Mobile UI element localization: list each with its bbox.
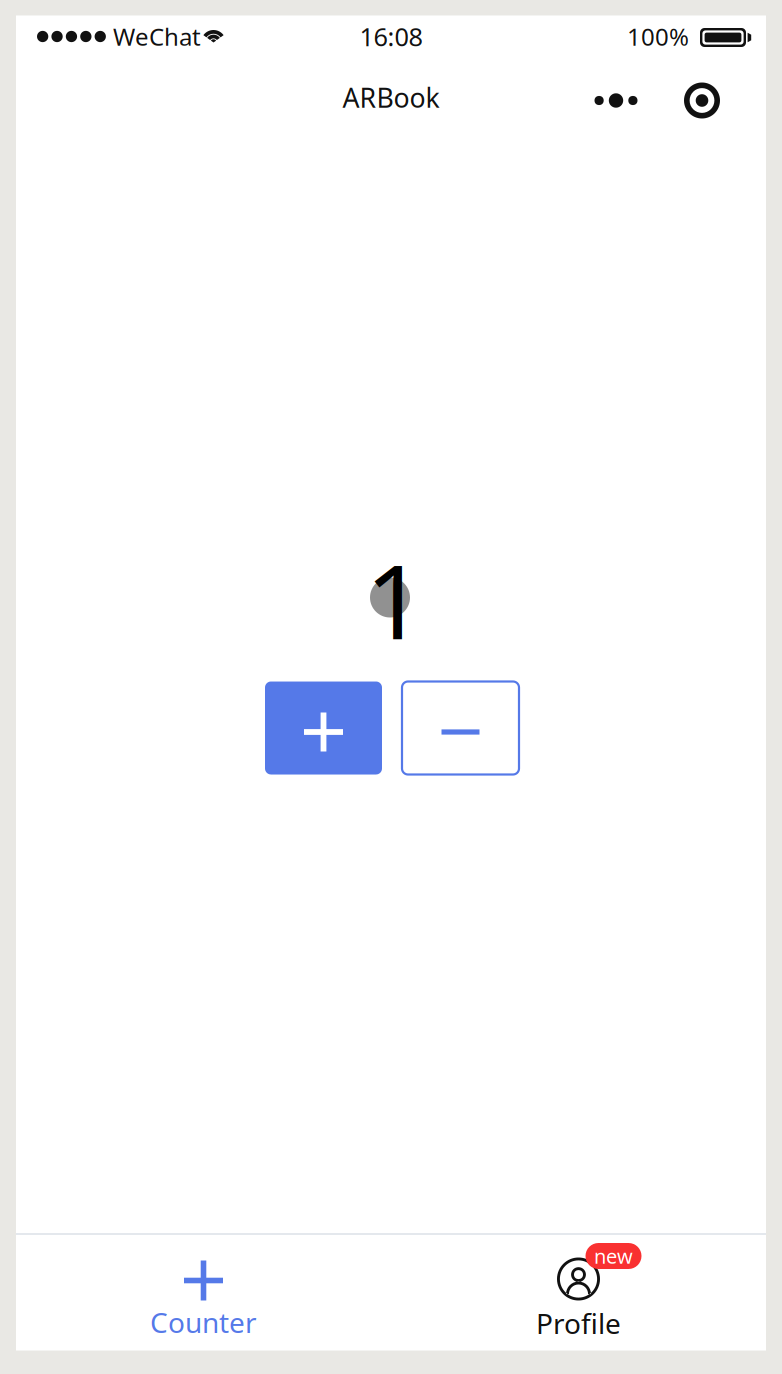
staticText: 16:08 [359,20,422,53]
staticText: ARBook [342,80,439,115]
button[interactable]: Increment [265,681,382,774]
button[interactable]: Decrement [402,681,519,774]
staticText: new [594,1243,633,1269]
staticText: Profile [536,1304,621,1342]
button[interactable]: Capture [669,61,735,139]
button[interactable]: Counter [16,1234,391,1350]
staticText: WeChat [113,21,201,52]
button[interactable]: More [581,61,651,139]
button[interactable]: new [391,1234,766,1350]
staticText: Counter [150,1303,257,1341]
staticText: 1 [365,531,424,668]
staticText: 100% [627,21,689,52]
